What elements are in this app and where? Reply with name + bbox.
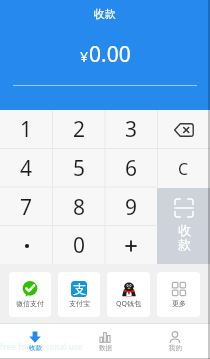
staticText: 数据 bbox=[99, 344, 112, 352]
staticText: 收款 bbox=[177, 222, 192, 253]
staticText: 微信支付 bbox=[16, 299, 44, 308]
staticText: 5 bbox=[73, 154, 86, 183]
staticText: 3 bbox=[125, 115, 138, 144]
staticText: C bbox=[178, 158, 189, 180]
button[interactable]: 3 bbox=[105, 110, 157, 149]
button[interactable]: 1 bbox=[0, 110, 53, 149]
button[interactable]: 2 bbox=[53, 110, 105, 149]
staticText: 收款 bbox=[29, 344, 42, 352]
button[interactable]: 5 bbox=[53, 149, 105, 188]
staticText: 7 bbox=[20, 193, 33, 222]
button[interactable]: 支 bbox=[58, 272, 100, 317]
button[interactable]: 我的 bbox=[140, 324, 210, 359]
button[interactable]: QQ钱包 bbox=[107, 272, 150, 317]
staticText: 0 bbox=[73, 231, 86, 260]
staticText: ¥ bbox=[80, 47, 89, 66]
staticText: QQ钱包 bbox=[116, 299, 141, 309]
button[interactable]: 微信支付 bbox=[9, 272, 51, 317]
button[interactable]: 4 bbox=[0, 149, 53, 188]
staticText: 9 bbox=[125, 193, 138, 222]
button[interactable] bbox=[105, 227, 157, 264]
staticText: 1 bbox=[20, 115, 33, 144]
button[interactable]: 6 bbox=[105, 149, 157, 188]
staticText: 我的 bbox=[169, 344, 182, 352]
staticText: 6 bbox=[125, 154, 138, 183]
button[interactable]: 8 bbox=[53, 188, 105, 227]
button[interactable]: Backspace bbox=[157, 110, 210, 149]
staticText: free for personal use bbox=[0, 341, 83, 352]
button[interactable]: 7 bbox=[0, 188, 53, 227]
button[interactable] bbox=[0, 227, 53, 264]
staticText: 8 bbox=[73, 193, 86, 222]
button[interactable]: 更多 bbox=[157, 272, 200, 317]
staticText: 更多 bbox=[172, 299, 186, 308]
staticText: 2 bbox=[73, 115, 86, 144]
button[interactable]: 数据 bbox=[70, 324, 140, 359]
staticText: 支付宝 bbox=[69, 299, 90, 308]
button[interactable]: 收款 bbox=[157, 188, 210, 264]
button[interactable]: 9 bbox=[105, 188, 157, 227]
button[interactable]: C bbox=[157, 149, 210, 188]
staticText: 4 bbox=[20, 154, 33, 183]
staticText: 0.00 bbox=[89, 40, 131, 69]
button[interactable]: 0 bbox=[53, 227, 105, 264]
staticText: 支 bbox=[73, 281, 86, 297]
button[interactable]: 收款 bbox=[0, 324, 70, 359]
staticText: 收款 bbox=[94, 7, 116, 21]
